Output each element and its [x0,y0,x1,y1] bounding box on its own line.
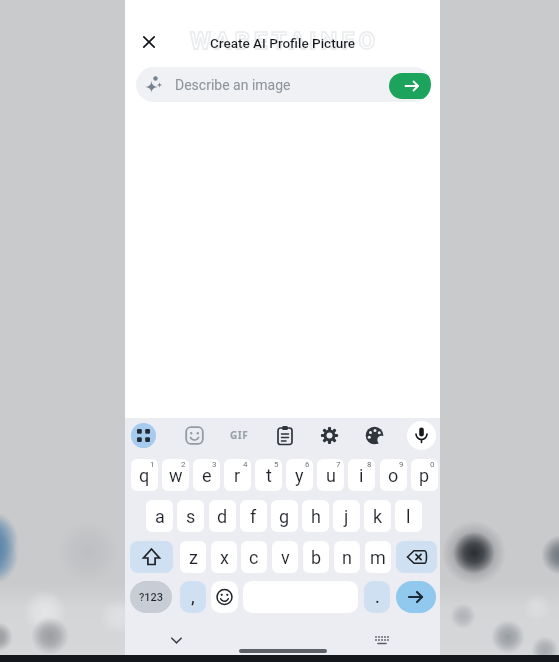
button[interactable]: b [303,541,329,573]
button[interactable] [396,541,437,573]
button[interactable]: , [180,581,206,613]
staticText: d [217,506,228,527]
staticText: y [295,465,304,486]
staticText: q [139,465,150,486]
button[interactable]: q [131,459,158,491]
staticText: i [359,465,364,486]
staticText: s [186,506,196,527]
staticText: 9 [399,460,404,469]
staticText: e [202,465,212,486]
staticText: . [375,587,380,607]
button[interactable]: Describe an image [136,67,431,102]
staticText: 5 [274,460,279,469]
staticText: b [311,547,322,568]
staticText: j [344,506,349,527]
staticText: a [155,506,165,527]
staticText: 2 [181,460,186,469]
button[interactable]: y [286,459,313,491]
button[interactable]: n [334,541,360,573]
button[interactable] [180,421,208,449]
staticText: l [406,506,411,527]
button[interactable]: t [255,459,282,491]
staticText: h [311,506,321,527]
button[interactable]: z [180,541,206,573]
button[interactable]: d [209,500,236,532]
staticText: 1 [150,460,155,469]
button[interactable] [131,423,156,448]
staticText: v [281,547,290,568]
button[interactable] [407,421,436,450]
staticText: c [249,547,259,568]
staticText: GIF [230,428,249,442]
staticText: , [191,587,195,607]
staticText: 7 [336,460,341,469]
button[interactable]: ?123 [130,581,172,613]
staticText: 8 [367,460,372,469]
button[interactable]: f [240,500,267,532]
button[interactable]: m [365,541,391,573]
staticText: z [189,547,198,568]
staticText: 3 [212,460,217,469]
button[interactable]: s [177,500,204,532]
button[interactable]: x [211,541,237,573]
staticText: k [373,506,383,527]
staticText: Create AI Profile Picture [210,35,356,51]
button[interactable]: i [348,459,375,491]
button[interactable]: p [411,459,438,491]
button[interactable] [271,421,299,449]
button[interactable]: v [272,541,298,573]
staticText: t [266,465,272,486]
staticText: u [326,465,336,486]
button[interactable] [133,26,165,58]
staticText: w [169,465,183,486]
button[interactable]: u [317,459,344,491]
button[interactable]: . [364,581,390,613]
button[interactable]: r [224,459,251,491]
staticText: m [370,547,386,568]
button[interactable] [389,73,431,99]
staticText: 0 [430,460,435,469]
staticText: 6 [305,460,310,469]
button[interactable]: a [146,500,173,532]
staticText: x [220,547,229,568]
button[interactable]: j [333,500,360,532]
button[interactable] [366,624,398,656]
button[interactable]: c [241,541,267,573]
staticText: n [342,547,352,568]
staticText: g [279,506,290,527]
button[interactable] [160,624,192,656]
staticText: Describe an image [175,77,291,93]
button[interactable] [315,421,343,449]
staticText: r [234,465,241,486]
button[interactable] [130,541,173,573]
button[interactable]: w [162,459,189,491]
staticText: f [250,506,257,527]
staticText: o [388,465,399,486]
button[interactable]: g [271,500,298,532]
button[interactable] [396,581,436,613]
button[interactable]: l [395,500,422,532]
staticText: p [419,465,430,486]
staticText: WABETAINFO [127,27,442,57]
staticText: 4 [243,460,248,469]
button[interactable]: o [380,459,407,491]
button[interactable]: k [364,500,391,532]
button[interactable]: e [193,459,220,491]
button[interactable]: GIF [225,421,253,449]
button[interactable]: h [302,500,329,532]
staticText: ?123 [139,591,164,604]
button[interactable] [211,581,238,613]
button[interactable] [360,421,388,449]
